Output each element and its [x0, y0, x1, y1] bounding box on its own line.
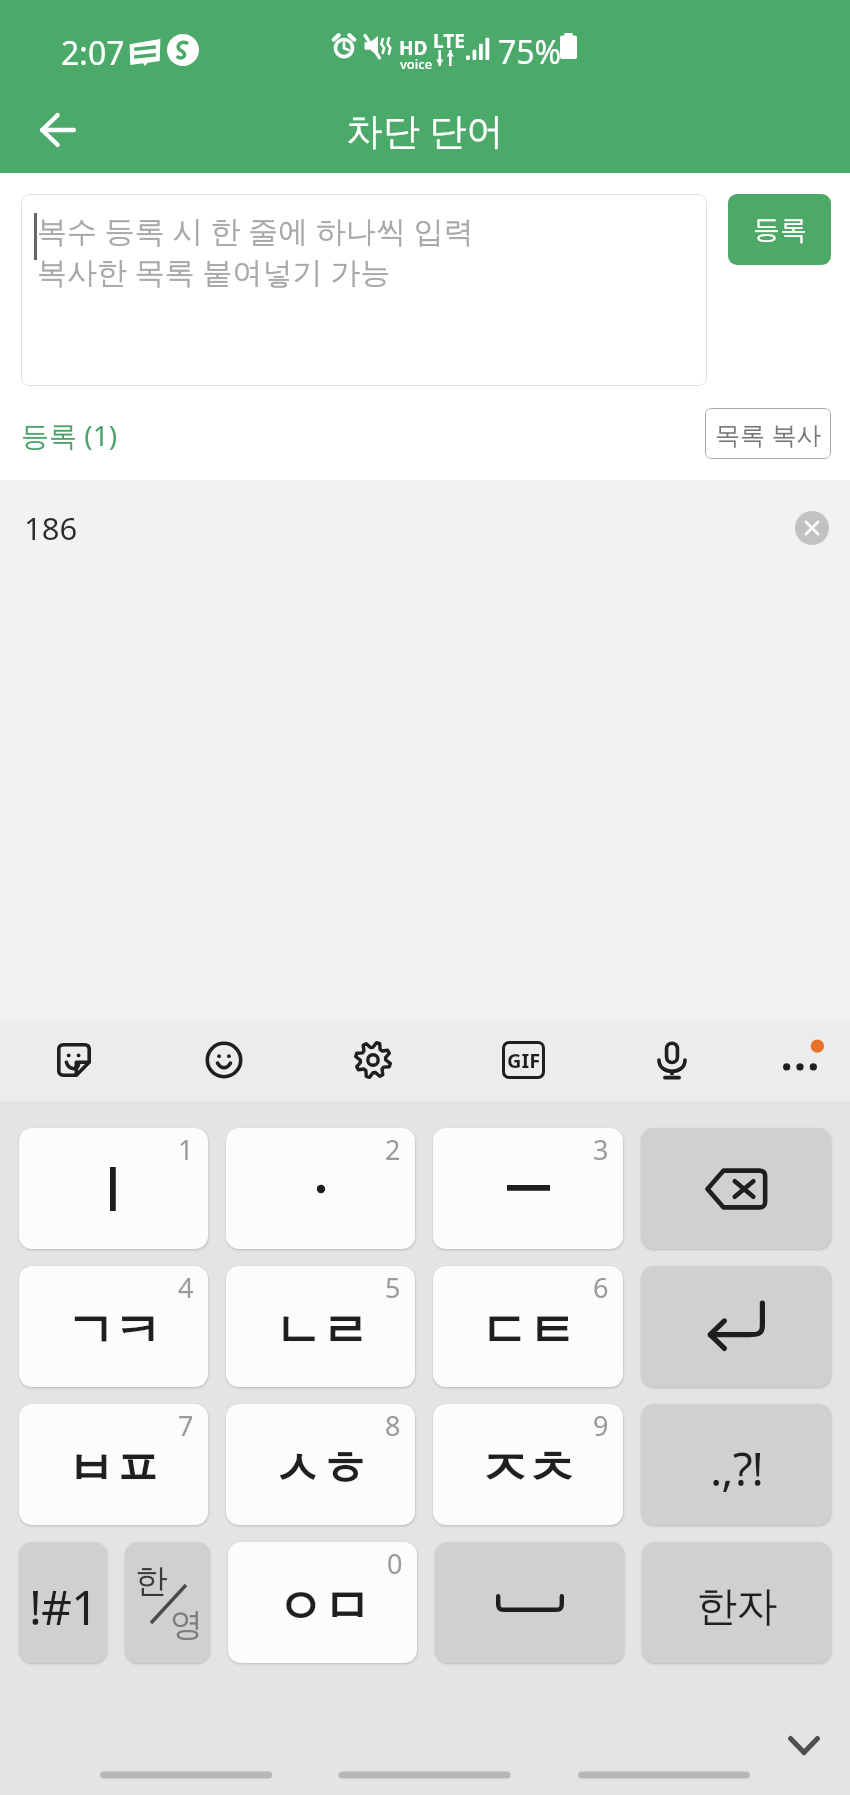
staticText: LTE	[433, 28, 465, 54]
button[interactable]: Voice input	[631, 1019, 713, 1101]
button[interactable]: !#1	[19, 1542, 107, 1663]
button[interactable]: More options	[759, 1019, 841, 1101]
button[interactable]: Keyboard settings	[332, 1019, 414, 1101]
button[interactable]: Backspace	[641, 1128, 831, 1249]
button[interactable]: .,?!	[641, 1404, 831, 1525]
button[interactable]: 9	[433, 1404, 623, 1525]
staticText: 차단 단어	[346, 104, 504, 155]
staticText: 복수 등록 시 한 줄에 하나씩 입력	[37, 210, 474, 251]
staticText: ㅈㅊ	[481, 1439, 575, 1499]
staticText: 한	[135, 1560, 168, 1602]
staticText: 5	[385, 1269, 401, 1306]
staticText: .,?!	[710, 1437, 763, 1500]
button[interactable]: 3	[433, 1128, 623, 1249]
button[interactable]: 6	[433, 1266, 623, 1387]
staticText: voice	[400, 55, 433, 73]
button[interactable]: Korean English toggle	[125, 1542, 210, 1663]
button[interactable]: Back	[22, 94, 94, 166]
staticText: 4	[178, 1269, 194, 1306]
staticText: 등록 (1)	[21, 416, 118, 454]
button[interactable]: Enter	[641, 1266, 831, 1387]
button[interactable]: 0	[228, 1542, 417, 1663]
staticText: ㄷㅌ	[481, 1301, 575, 1361]
staticText: 복사한 목록 붙여넣기 가능	[37, 251, 391, 292]
staticText: 0	[387, 1545, 403, 1582]
button[interactable]: 등록	[728, 194, 831, 265]
button[interactable]: 1	[19, 1128, 208, 1249]
button[interactable]: Delete	[795, 511, 829, 545]
staticText: 3	[593, 1131, 609, 1168]
staticText: 9	[593, 1407, 609, 1444]
staticText: 2	[385, 1131, 401, 1168]
button[interactable]: Sticker	[33, 1019, 115, 1101]
staticText: 7	[178, 1407, 194, 1444]
staticText: 한자	[697, 1581, 777, 1633]
button[interactable]: 7	[19, 1404, 208, 1525]
staticText: HD	[399, 35, 428, 61]
staticText: 6	[593, 1269, 609, 1306]
staticText: 186	[24, 507, 78, 549]
staticText: ㅂㅍ	[67, 1439, 161, 1499]
button[interactable]: Hide keyboard	[768, 1709, 840, 1781]
button[interactable]: Emoji	[183, 1019, 265, 1101]
button[interactable]: 4	[19, 1266, 208, 1387]
staticText: 1	[178, 1131, 194, 1168]
button[interactable]: 목록 복사	[705, 408, 831, 459]
staticText: 75%	[498, 30, 562, 74]
button[interactable]: 5	[226, 1266, 415, 1387]
staticText: !#1	[29, 1574, 98, 1639]
staticText: ㄴㄹ	[274, 1301, 368, 1361]
staticText: ㄱㅋ	[67, 1301, 161, 1361]
staticText: GIF	[507, 1047, 541, 1074]
staticText: 2:07	[61, 31, 125, 75]
button[interactable]: 복수 등록 시 한 줄에 하나씩 입력	[21, 194, 707, 386]
button[interactable]: Space	[435, 1542, 624, 1663]
staticText: ㅅㅎ	[274, 1439, 368, 1499]
staticText: 목록 복사	[715, 417, 822, 451]
button[interactable]: 등록 (1)	[13, 406, 126, 464]
button[interactable]: 2	[226, 1128, 415, 1249]
button[interactable]: GIF	[482, 1019, 564, 1101]
button[interactable]: 186	[0, 480, 850, 576]
button[interactable]: 한자	[642, 1542, 831, 1663]
staticText: 8	[385, 1407, 401, 1444]
staticText: ㅇㅁ	[276, 1577, 370, 1637]
button[interactable]: 8	[226, 1404, 415, 1525]
staticText: 등록	[753, 213, 807, 247]
staticText: 영	[170, 1604, 203, 1646]
